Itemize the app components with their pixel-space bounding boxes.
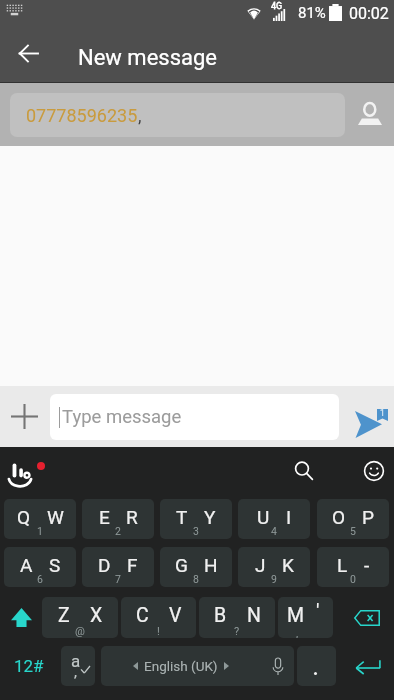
button[interactable]: Search xyxy=(282,449,326,493)
staticText: C xyxy=(136,604,149,627)
staticText: 7 xyxy=(115,573,121,585)
button[interactable]: E xyxy=(82,499,154,539)
staticText: 2 xyxy=(115,525,121,537)
button[interactable]: M xyxy=(278,597,333,638)
button[interactable]: G xyxy=(160,547,232,587)
button[interactable]: Shift xyxy=(0,597,42,638)
staticText: O xyxy=(332,506,346,528)
button[interactable]: Back xyxy=(0,24,56,83)
staticText: 81% xyxy=(298,4,326,22)
staticText: , xyxy=(138,105,142,126)
staticText: English (UK) xyxy=(144,658,218,674)
staticText: E xyxy=(99,506,110,528)
staticText: 00:02 xyxy=(349,4,389,23)
staticText: X xyxy=(90,604,103,627)
button[interactable]: Enter xyxy=(340,646,394,686)
button[interactable]: J xyxy=(238,547,310,587)
button[interactable]: L xyxy=(317,547,389,587)
button[interactable]: Switch language xyxy=(61,646,95,686)
button[interactable]: C xyxy=(121,597,196,638)
staticText: F xyxy=(127,554,138,576)
staticText: 1 xyxy=(37,525,43,537)
button[interactable]: 12# xyxy=(0,646,58,686)
button[interactable]: B xyxy=(199,597,275,638)
staticText: 07778596235 xyxy=(26,105,138,126)
button[interactable]: Emoji xyxy=(352,449,394,493)
staticText: D xyxy=(98,554,111,576)
staticText: 3 xyxy=(193,525,199,537)
staticText: G xyxy=(175,554,188,576)
staticText: 4G xyxy=(271,1,283,12)
staticText: New message xyxy=(78,45,218,71)
staticText: V xyxy=(169,604,182,627)
staticText: Y xyxy=(204,506,216,528)
staticText: 5 xyxy=(350,525,356,537)
staticText: K xyxy=(282,554,294,576)
staticText: N xyxy=(247,604,261,627)
staticText: H xyxy=(204,554,218,576)
staticText: Z xyxy=(58,604,70,627)
button[interactable]: A xyxy=(4,547,76,587)
staticText: R xyxy=(126,506,138,528)
staticText: Q xyxy=(17,506,31,528)
staticText: 0 xyxy=(350,573,356,585)
button[interactable]: Type message xyxy=(50,394,339,440)
button[interactable]: T xyxy=(160,499,232,539)
staticText: A xyxy=(20,554,33,576)
staticText: T xyxy=(176,506,188,528)
staticText: 4 xyxy=(271,525,277,537)
button[interactable]: O xyxy=(317,499,389,539)
button[interactable]: 07778596235 xyxy=(10,93,345,137)
staticText: L xyxy=(337,554,348,576)
staticText: B xyxy=(214,604,227,627)
staticText: W xyxy=(47,506,64,528)
button[interactable]: Send xyxy=(348,386,394,447)
button[interactable]: D xyxy=(82,547,154,587)
staticText: U xyxy=(257,506,270,528)
staticText: 1 xyxy=(380,408,385,418)
button[interactable]: Choose contact xyxy=(345,83,394,146)
staticText: Type message xyxy=(62,406,182,428)
button[interactable]: English (UK) xyxy=(101,646,294,686)
staticText: , xyxy=(296,627,299,638)
staticText: I xyxy=(286,506,292,528)
staticText: M xyxy=(287,604,305,627)
staticText: ? xyxy=(234,625,240,638)
staticText: ! xyxy=(157,625,160,638)
button[interactable]: U xyxy=(238,499,310,539)
button[interactable]: Keyboard menu xyxy=(0,454,40,492)
staticText: 8 xyxy=(193,573,199,585)
button[interactable]: Z xyxy=(42,597,118,638)
button[interactable] xyxy=(297,646,336,686)
button[interactable]: Q xyxy=(4,499,76,539)
button[interactable]: Add attachment xyxy=(0,386,48,447)
staticText: S xyxy=(49,554,61,576)
staticText: 12# xyxy=(14,656,44,676)
staticText: J xyxy=(255,554,266,576)
staticText: @ xyxy=(75,625,85,638)
staticText: , xyxy=(74,663,77,681)
staticText: ' xyxy=(316,600,320,623)
staticText: 6 xyxy=(37,573,43,585)
button[interactable]: Backspace xyxy=(340,597,394,638)
staticText: 9 xyxy=(271,573,277,585)
staticText: a xyxy=(71,651,81,671)
staticText: P xyxy=(362,506,374,528)
staticText: - xyxy=(364,554,370,576)
